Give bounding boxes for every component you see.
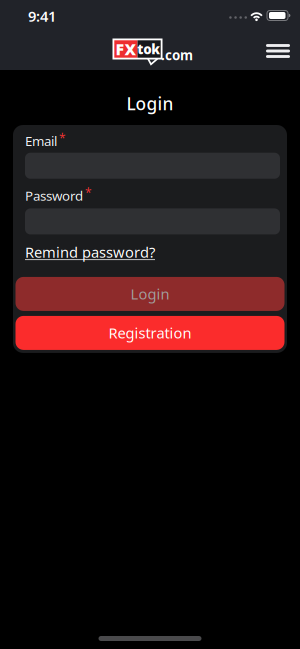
staticText: *	[59, 130, 66, 146]
staticText: Remind password?	[25, 242, 155, 262]
staticText: Email	[25, 132, 57, 150]
button[interactable]: Menu	[266, 44, 300, 58]
staticText: Login	[126, 92, 173, 115]
staticText: *	[85, 185, 92, 201]
staticText: Password	[25, 187, 83, 204]
staticText: tok	[137, 40, 160, 58]
button[interactable]: Login	[15, 277, 284, 311]
staticText: Login	[130, 284, 169, 304]
staticText: FX	[115, 38, 136, 60]
button[interactable]: Remind password?	[25, 242, 155, 262]
staticText: Registration	[108, 323, 191, 343]
staticText: 9:41	[28, 6, 56, 26]
button[interactable]: Registration	[15, 316, 284, 350]
staticText: .com	[161, 46, 193, 64]
button[interactable]: FXtok.com	[112, 38, 190, 65]
